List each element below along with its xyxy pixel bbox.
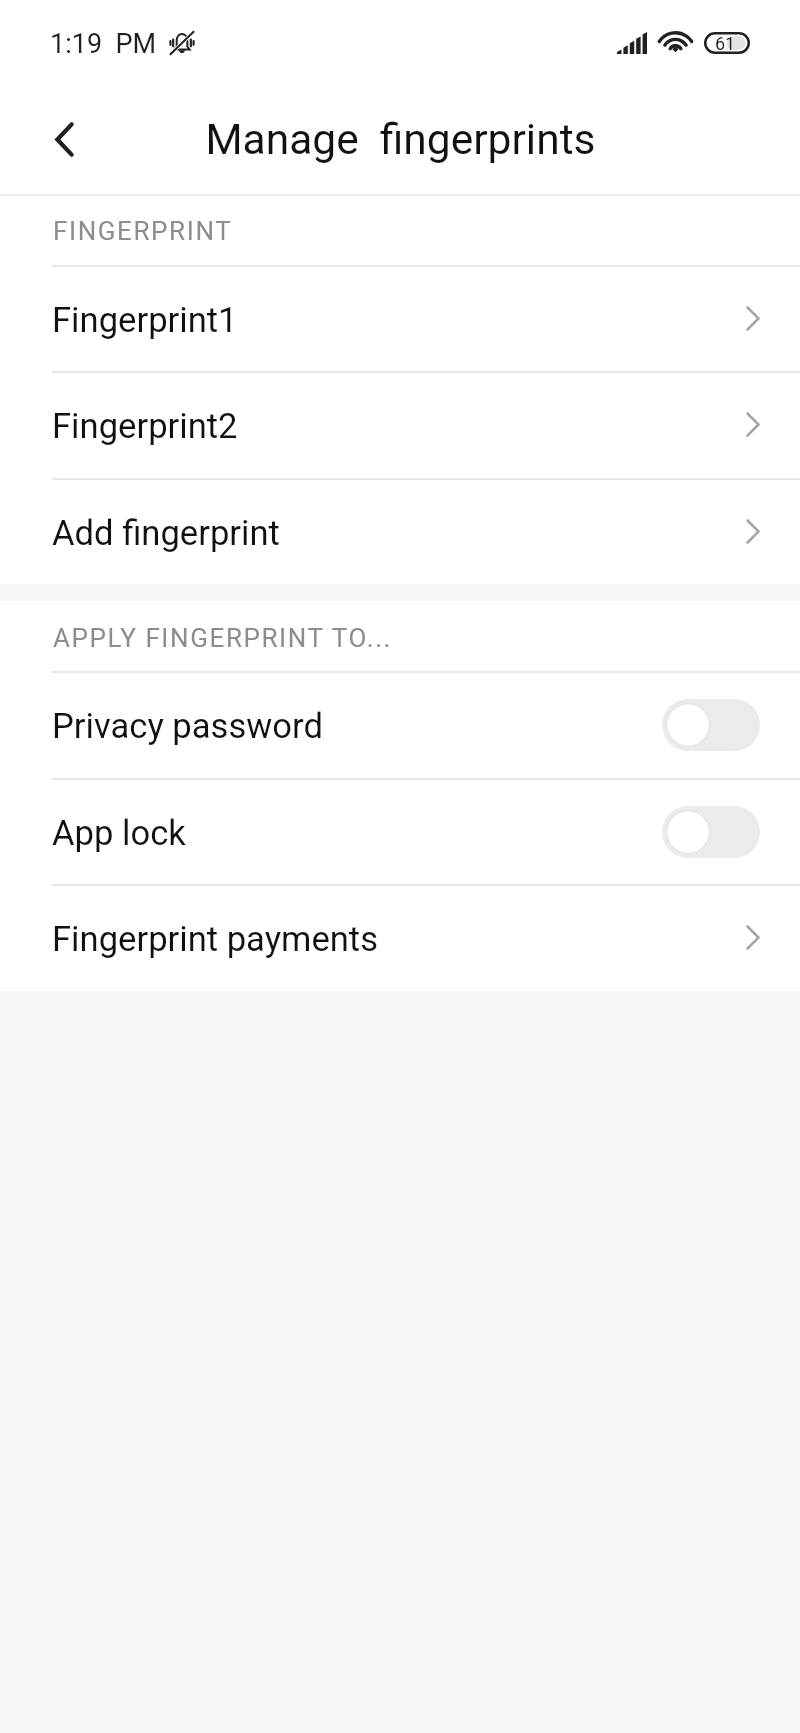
button[interactable]: Privacy password, off (662, 699, 760, 751)
staticText: APPLY FINGERPRINT TO... (53, 623, 393, 653)
staticText: 61 (715, 33, 736, 54)
staticText: Add fingerprint (52, 513, 280, 554)
button[interactable]: Privacy password (0, 671, 800, 778)
button[interactable]: Add fingerprint (0, 478, 800, 584)
button[interactable]: Fingerprint payments (0, 884, 800, 991)
staticText: Fingerprint payments (52, 919, 379, 960)
staticText: Manage fingerprints (205, 115, 596, 165)
staticText: Fingerprint2 (52, 406, 238, 447)
button[interactable]: App lock, off (662, 806, 760, 858)
button[interactable]: Back (0, 86, 129, 194)
staticText: FINGERPRINT (53, 216, 233, 246)
staticText: 1:19 PM (50, 28, 157, 60)
button[interactable]: Fingerprint1 (0, 265, 800, 372)
button[interactable]: Fingerprint2 (0, 371, 800, 478)
staticText: Privacy password (52, 706, 323, 747)
button[interactable]: App lock (0, 778, 800, 885)
staticText: Fingerprint1 (52, 300, 238, 341)
staticText: App lock (52, 813, 186, 854)
